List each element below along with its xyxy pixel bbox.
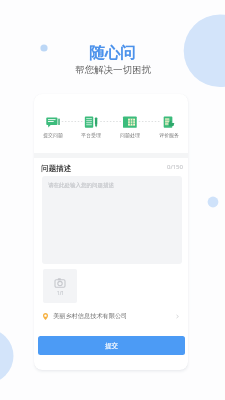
button[interactable]: 评价服务 (149, 116, 188, 138)
staticText: 提交 (105, 342, 118, 350)
staticText: 1/1 (57, 290, 64, 296)
staticText: 提交问题 (43, 132, 63, 138)
button[interactable]: Add photo (43, 269, 77, 303)
button[interactable]: 提交问题 (34, 116, 72, 138)
staticText: 美丽乡村信息技术有限公司 (53, 312, 128, 320)
button[interactable]: 问题处理 (110, 116, 149, 138)
staticText: 平台受理 (81, 132, 101, 138)
staticText: 请在此处输入您的问题描述 (48, 182, 114, 189)
button[interactable]: 平台受理 (72, 116, 110, 138)
button[interactable]: 美丽乡村信息技术有限公司 (34, 308, 188, 324)
button[interactable]: 提交 (38, 336, 185, 355)
staticText: 随心问 (89, 43, 136, 63)
staticText: 问题处理 (120, 132, 140, 138)
staticText: 问题描述 (41, 164, 71, 173)
staticText: 评价服务 (159, 132, 179, 138)
button[interactable]: 请在此处输入您的问题描述 (42, 176, 182, 264)
staticText: 帮您解决一切困扰 (75, 64, 151, 76)
staticText: 0/150 (167, 163, 183, 171)
